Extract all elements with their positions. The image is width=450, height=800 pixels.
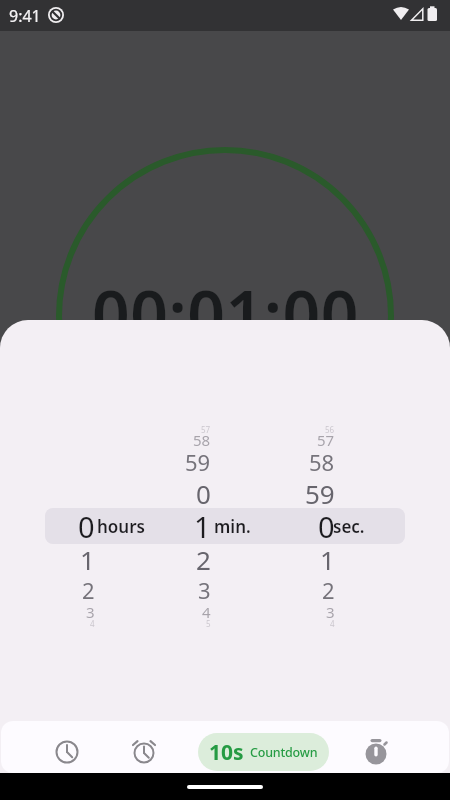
- staticText: 2: [82, 575, 95, 605]
- button[interactable]: [124, 732, 164, 772]
- staticText: 00:01:00: [92, 268, 359, 358]
- button[interactable]: 10s: [198, 733, 329, 771]
- staticText: 3: [198, 575, 211, 605]
- staticText: 1: [194, 507, 211, 546]
- staticText: 57: [317, 430, 335, 450]
- staticText: 59: [305, 476, 335, 511]
- staticText: hours: [97, 515, 145, 538]
- staticText: 2: [196, 542, 211, 577]
- staticText: 3: [326, 602, 335, 622]
- staticText: 58: [193, 430, 211, 450]
- staticText: min.: [214, 515, 251, 538]
- staticText: 5: [206, 618, 211, 629]
- staticText: 58: [309, 447, 335, 477]
- staticText: 0: [78, 507, 95, 546]
- staticText: 1: [80, 542, 95, 577]
- staticText: 56: [325, 424, 335, 435]
- staticText: 0: [318, 507, 335, 546]
- staticText: 3: [86, 602, 95, 622]
- staticText: 4: [330, 618, 335, 629]
- button[interactable]: [45, 508, 405, 544]
- staticText: 10s: [209, 738, 244, 767]
- button[interactable]: [356, 732, 396, 772]
- staticText: 59: [185, 447, 211, 477]
- button[interactable]: [47, 732, 87, 772]
- staticText: 57: [201, 424, 211, 435]
- staticText: sec.: [333, 515, 365, 538]
- staticText: 1: [320, 542, 335, 577]
- staticText: 4: [202, 602, 211, 622]
- staticText: 9:41: [9, 5, 41, 27]
- staticText: 2: [322, 575, 335, 605]
- staticText: 0: [196, 476, 211, 511]
- staticText: 4: [90, 618, 95, 629]
- staticText: Countdown: [250, 744, 318, 761]
